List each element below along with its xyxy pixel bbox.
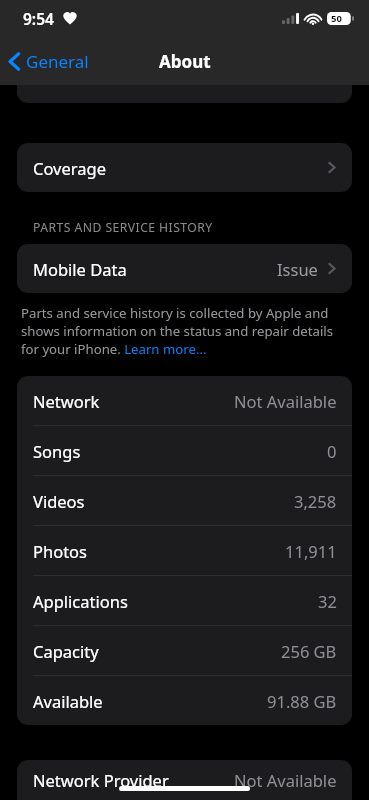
staticText: Capacity	[33, 640, 99, 662]
staticText: 32	[318, 590, 337, 612]
button[interactable]: Serial Number	[17, 63, 352, 103]
staticText: Not Available	[234, 390, 337, 412]
button[interactable]: Coverage	[17, 143, 352, 192]
staticText: Photos	[33, 540, 88, 562]
staticText: Songs	[33, 440, 81, 462]
staticText: Parts and service history is collected b…	[21, 304, 344, 358]
staticText: Network	[33, 390, 100, 412]
staticText: Not Available	[234, 769, 337, 791]
button[interactable]: Network Provider	[17, 760, 352, 800]
staticText: 50	[331, 12, 342, 25]
button[interactable]: Available	[17, 676, 352, 725]
staticText: Y22WGH7V2SQED	[197, 63, 337, 74]
staticText: Available	[33, 690, 103, 712]
staticText: About	[159, 50, 211, 73]
staticText: 91.88 GB	[267, 690, 337, 712]
staticText: Applications	[33, 590, 128, 612]
staticText: Issue	[277, 258, 318, 280]
button[interactable]: Back to General	[0, 44, 101, 79]
button[interactable]: Songs	[17, 426, 352, 475]
staticText: 3,258	[294, 490, 337, 512]
button[interactable]: Mobile Data	[17, 244, 352, 293]
staticText: Serial Number	[33, 63, 145, 74]
button[interactable]: Network	[17, 376, 352, 425]
staticText: Mobile Data	[33, 258, 127, 280]
button[interactable]: Photos	[17, 526, 352, 575]
other: Back to General	[8, 51, 21, 72]
staticText: Coverage	[33, 157, 106, 179]
staticText: PARTS AND SERVICE HISTORY	[33, 219, 213, 236]
staticText: 256 GB	[281, 640, 337, 662]
staticText: 9:54	[23, 8, 54, 29]
staticText: 0	[327, 440, 337, 462]
button[interactable]: Capacity	[17, 626, 352, 675]
staticText: Videos	[33, 490, 85, 512]
button[interactable]: Videos	[17, 476, 352, 525]
staticText: 11,911	[285, 540, 337, 562]
button[interactable]: Applications	[17, 576, 352, 625]
staticText: General	[26, 50, 89, 73]
staticText: Network Provider	[33, 769, 169, 791]
